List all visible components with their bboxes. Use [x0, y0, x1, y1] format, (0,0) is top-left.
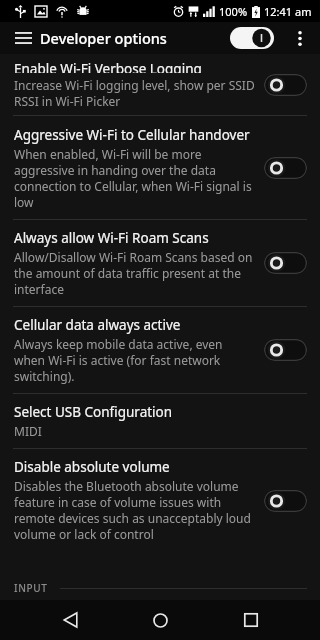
button[interactable]: Toggle [264, 252, 307, 274]
button[interactable]: Toggle [264, 339, 307, 361]
button[interactable]: Toggle [264, 74, 307, 96]
staticText: Always allow Wi-Fi Roam Scans [14, 229, 209, 247]
staticText: Disables the Bluetooth absolute volume f… [14, 478, 256, 542]
button[interactable]: Toggle [264, 157, 307, 179]
button[interactable]: Developer options on [230, 27, 274, 49]
staticText: Disable absolute volume [14, 458, 170, 476]
staticText: Increase Wi-Fi logging level, show per S… [14, 77, 258, 109]
button[interactable]: More options [288, 26, 312, 50]
button[interactable]: Toggle [264, 490, 307, 512]
staticText: Select USB Configuration [14, 403, 173, 421]
staticText: 12:41 am [264, 4, 312, 19]
button[interactable]: Cellular data always active [0, 307, 320, 393]
button[interactable]: Always allow Wi-Fi Roam Scans [0, 220, 320, 306]
button[interactable]: Select USB Configuration [0, 394, 320, 448]
staticText: Aggressive Wi-Fi to Cellular handover [14, 126, 250, 144]
staticText: Cellular data always active [14, 316, 181, 334]
staticText: Always keep mobile data active, even whe… [14, 336, 256, 384]
button[interactable]: Open navigation drawer [10, 25, 36, 51]
staticText: Allow/Disallow Wi-Fi Roam Scans based on… [14, 249, 256, 297]
button[interactable]: Back [49, 600, 91, 640]
staticText: 100% [219, 4, 248, 19]
staticText: INPUT [14, 581, 48, 595]
staticText: Developer options [40, 28, 167, 48]
button[interactable]: Recent apps [230, 600, 272, 640]
button[interactable]: Disable absolute volume [0, 449, 320, 552]
button[interactable]: Home [139, 600, 181, 640]
staticText: MIDI [14, 423, 42, 439]
staticText: Enable Wi-Fi Verbose Logging [14, 60, 202, 73]
button[interactable]: Aggressive Wi-Fi to Cellular handover [0, 116, 320, 219]
staticText: When enabled, Wi-Fi will be more aggress… [14, 146, 256, 210]
